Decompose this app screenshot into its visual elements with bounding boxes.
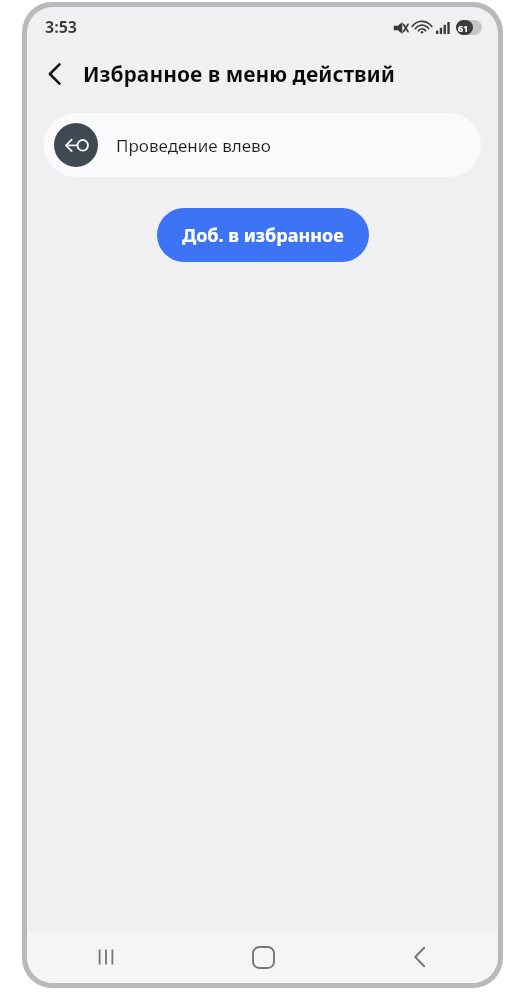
staticText: Избранное в меню действий [83, 60, 395, 89]
button[interactable]: Back [389, 931, 451, 983]
staticText: 3:53 [45, 16, 77, 38]
staticText: 61 [458, 22, 469, 34]
button[interactable]: Home [232, 931, 294, 983]
staticText: Доб. в избранное [182, 223, 344, 248]
button[interactable]: Back [33, 52, 77, 96]
button[interactable]: Проведение влево [44, 113, 481, 177]
staticText: Проведение влево [116, 134, 271, 157]
button[interactable]: Recent apps [75, 931, 137, 983]
button[interactable]: Доб. в избранное [157, 208, 369, 262]
